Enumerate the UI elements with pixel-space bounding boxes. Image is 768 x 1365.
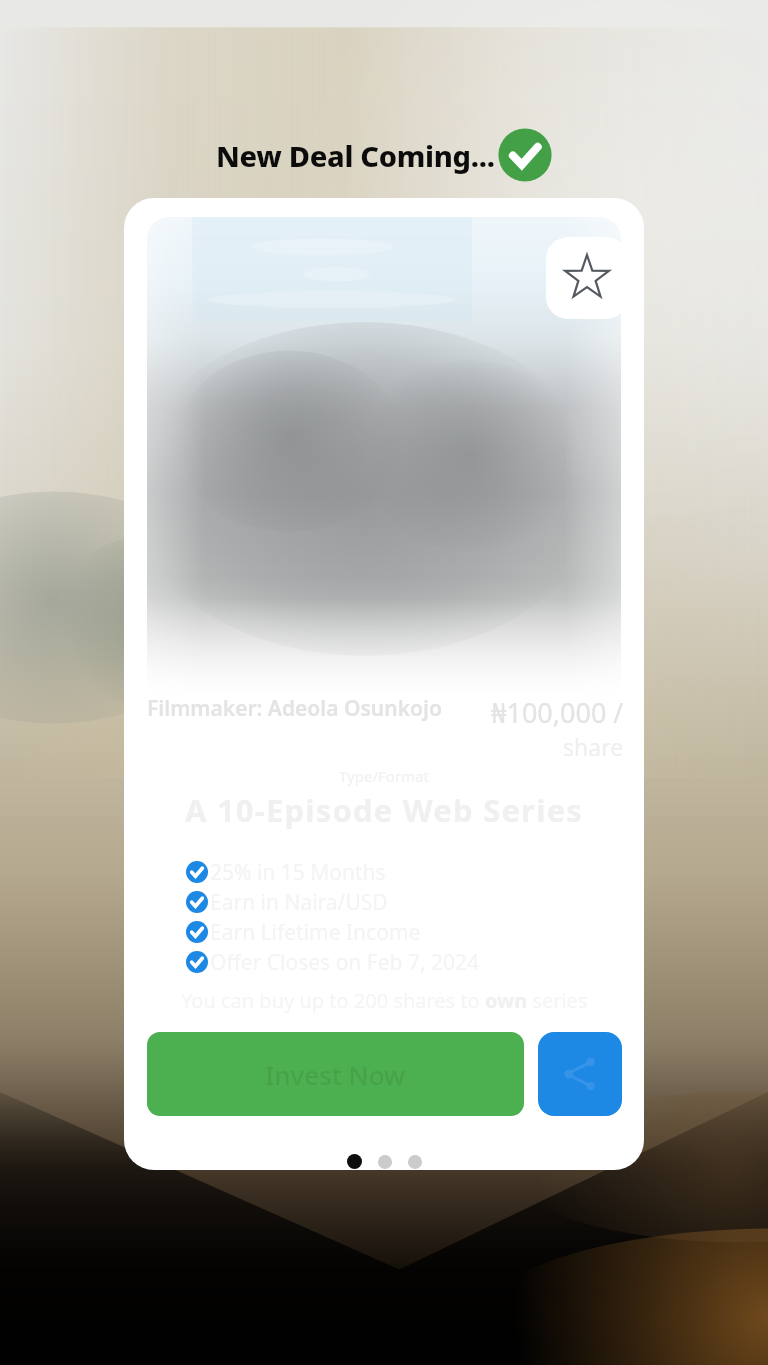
staticText: Offer Closes on Feb 7, 2024 bbox=[210, 948, 480, 977]
staticText: 25% in 15 Months bbox=[210, 858, 386, 887]
button[interactable]: Add to watchlist bbox=[124, 198, 644, 1170]
staticText: A 10-Episode Web Series bbox=[185, 789, 584, 831]
button[interactable]: Add to watchlist bbox=[546, 237, 628, 319]
staticText: Type/Format bbox=[339, 766, 429, 786]
staticText: Earn Lifetime Income bbox=[210, 918, 421, 947]
button[interactable]: Share bbox=[538, 1032, 622, 1116]
button[interactable]: Page bbox=[378, 1155, 392, 1169]
other: Verified bbox=[498, 128, 552, 182]
button[interactable]: Page bbox=[408, 1155, 422, 1169]
staticText: Earn in Naira/USD bbox=[210, 888, 388, 917]
staticText: share bbox=[563, 731, 624, 762]
button[interactable]: Invest Now bbox=[147, 1032, 524, 1116]
staticText: New Deal Coming... bbox=[216, 136, 495, 175]
staticText: Filmmaker: Adeola Osunkojo bbox=[147, 694, 442, 723]
button[interactable]: Page bbox=[347, 1154, 362, 1169]
staticText: ₦100,000 / bbox=[491, 694, 624, 731]
staticText: Invest Now bbox=[265, 1057, 406, 1092]
staticText: You can buy up to 200 shares to own seri… bbox=[181, 987, 588, 1014]
